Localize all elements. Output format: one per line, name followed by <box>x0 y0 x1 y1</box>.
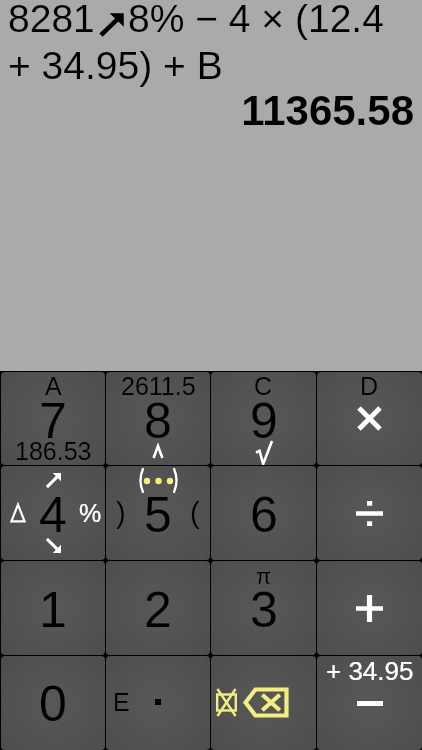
staticText: 186.53 <box>15 437 92 465</box>
button[interactable]: D <box>317 372 422 465</box>
staticText: ) <box>116 497 126 529</box>
staticText: π <box>256 564 272 589</box>
button[interactable]: + 34.95 <box>317 656 422 750</box>
staticText: ( <box>190 497 200 529</box>
staticText: 8281 <box>8 0 95 41</box>
button[interactable]: ) <box>106 466 210 560</box>
button[interactable]: 1 <box>1 561 105 655</box>
button[interactable]: π <box>211 561 316 655</box>
staticText: D <box>360 372 379 400</box>
other: Backspace <box>211 656 316 750</box>
staticText: 5 <box>144 487 172 543</box>
button[interactable]: A <box>1 372 105 465</box>
staticText: 2 <box>144 582 172 638</box>
staticText: + 34.95 <box>326 656 414 685</box>
staticText: E <box>113 688 130 716</box>
button[interactable]: 6 <box>211 466 316 560</box>
other: Divide <box>356 501 383 526</box>
button[interactable]: Backspace <box>211 656 316 750</box>
other: Plus <box>356 595 383 622</box>
button[interactable]: Divide <box>317 466 422 560</box>
button[interactable]: 2611.5 <box>106 372 210 465</box>
staticText: 8 <box>144 393 172 449</box>
staticText: 1 <box>39 582 67 638</box>
staticText: 2611.5 <box>121 372 196 400</box>
staticText: C <box>254 372 273 400</box>
staticText: 4 <box>39 487 67 543</box>
staticText: % <box>79 499 102 527</box>
button[interactable]: 4 <box>1 466 105 560</box>
button[interactable]: 2 <box>106 561 210 655</box>
staticText: 0 <box>39 676 67 732</box>
staticText: 6 <box>250 487 278 543</box>
staticText: 11365.58 <box>0 87 414 134</box>
button[interactable]: 0 <box>1 656 105 750</box>
button[interactable]: 8281 <box>0 0 422 371</box>
staticText: 8% − 4 × (12.4 <box>128 0 384 41</box>
button[interactable]: C <box>211 372 316 465</box>
button[interactable]: E <box>106 656 210 750</box>
button[interactable]: Plus <box>317 561 422 655</box>
staticText: A <box>45 372 62 400</box>
other: Multiply <box>357 406 382 431</box>
staticText: 3 <box>250 582 278 638</box>
staticText: 9 <box>250 393 278 449</box>
staticText: 7 <box>39 393 67 449</box>
staticText: + 34.95) + B <box>8 44 223 88</box>
